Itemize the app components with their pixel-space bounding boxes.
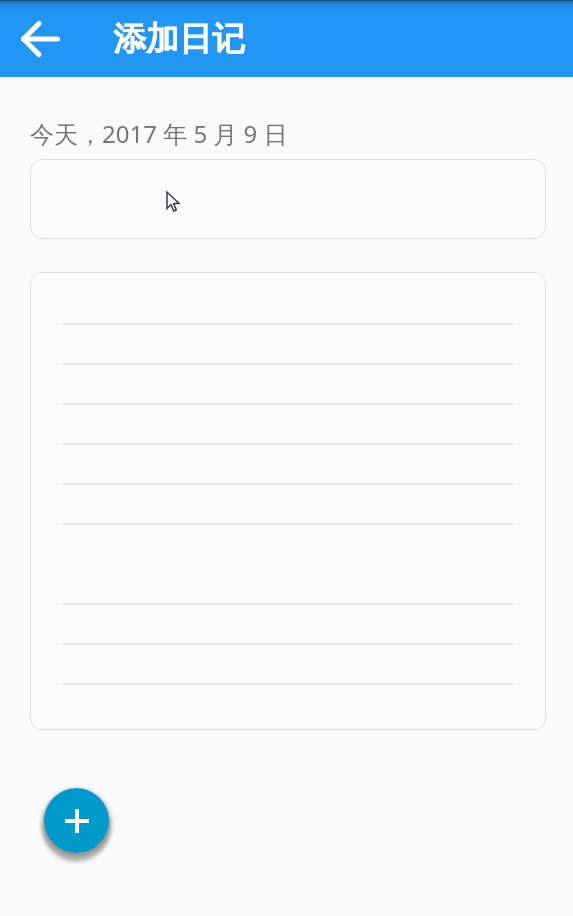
button[interactable] — [30, 159, 546, 239]
button[interactable]: Back — [14, 13, 66, 65]
staticText: 添加日记 — [113, 18, 245, 60]
button[interactable]: Add entry — [44, 788, 109, 853]
button[interactable] — [30, 272, 546, 730]
staticText: 今天，2017 年 5 月 9 日 — [30, 117, 288, 150]
